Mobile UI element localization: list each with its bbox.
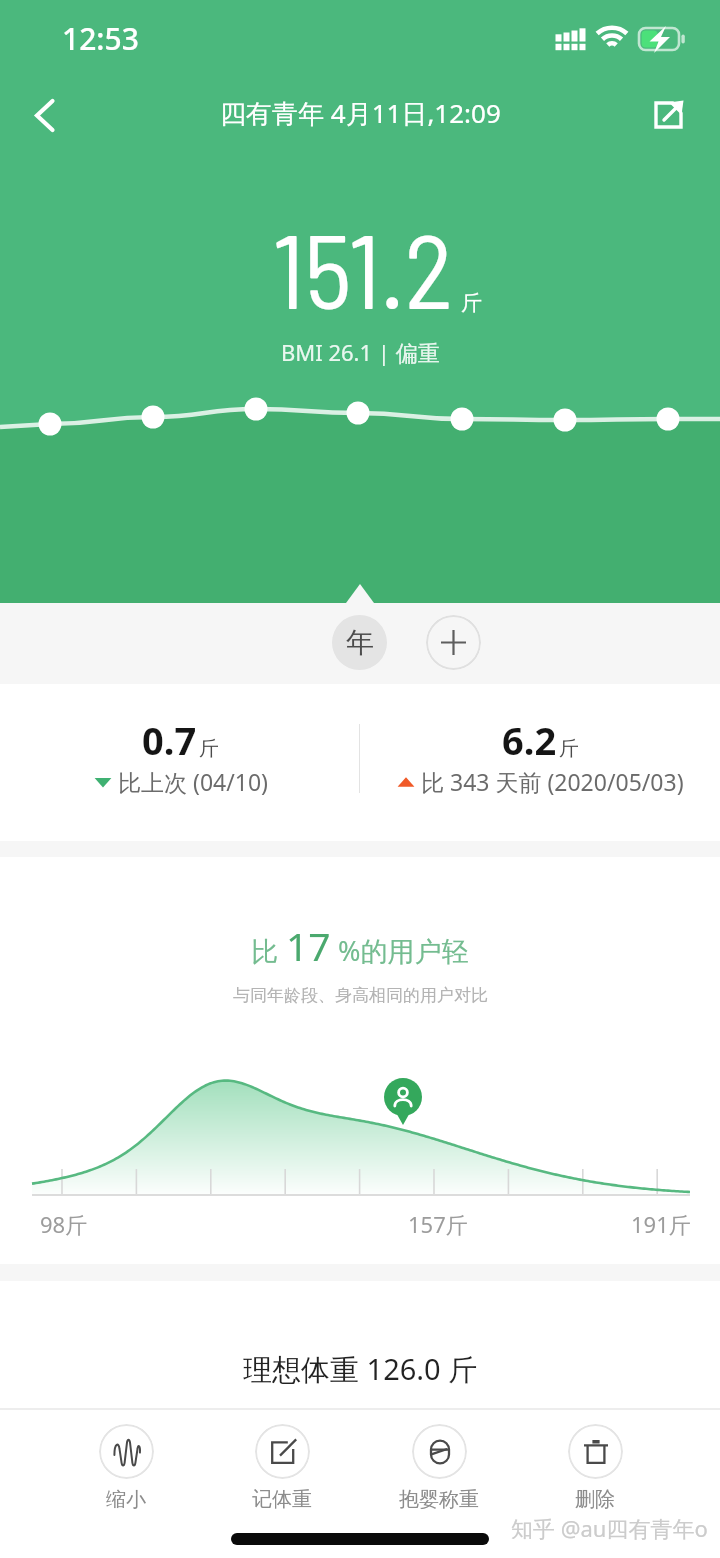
- staticText: 斤: [559, 736, 579, 761]
- staticText: 比: [251, 932, 286, 969]
- staticText: 157斤: [408, 1209, 468, 1239]
- staticText: 12:53: [62, 18, 139, 59]
- staticText: 191斤: [631, 1209, 691, 1239]
- staticText: 6.2: [502, 714, 557, 766]
- staticText: 比 343 天前 (2020/05/03): [421, 766, 684, 797]
- staticText: 98斤: [40, 1209, 88, 1239]
- staticText: 四有青年 4月11日,12:09: [220, 95, 501, 131]
- staticText: 缩小: [106, 1487, 146, 1512]
- staticText: 抱婴称重: [399, 1487, 479, 1512]
- staticText: 年: [346, 625, 374, 660]
- staticText: 斤: [199, 736, 219, 761]
- staticText: 0.7: [142, 714, 197, 766]
- staticText: 删除: [575, 1487, 615, 1512]
- button[interactable]: 0.7: [0, 714, 360, 797]
- staticText: 151.2: [273, 206, 453, 330]
- staticText: 17: [286, 919, 331, 972]
- button[interactable]: 年: [332, 615, 387, 670]
- button[interactable]: 抱婴称重: [379, 1424, 499, 1512]
- button[interactable]: Add: [426, 615, 481, 670]
- staticText: 比上次 (04/10): [118, 766, 268, 797]
- button[interactable]: 删除: [535, 1424, 655, 1512]
- staticText: 斤: [461, 290, 482, 316]
- button[interactable]: 记体重: [222, 1424, 342, 1512]
- button[interactable]: 缩小: [66, 1424, 186, 1512]
- button[interactable]: 理想体重 126.0 斤: [0, 1281, 720, 1408]
- staticText: BMI 26.1 | 偏重: [281, 337, 440, 367]
- button[interactable]: Share: [640, 86, 696, 142]
- staticText: 理想体重 126.0 斤: [243, 1349, 478, 1389]
- staticText: %的用户轻: [331, 932, 469, 969]
- staticText: 记体重: [252, 1487, 312, 1512]
- button[interactable]: Back: [13, 83, 77, 147]
- staticText: 知乎 @au四有青年o: [511, 1513, 708, 1543]
- staticText: 与同年龄段、身高相同的用户对比: [233, 985, 488, 1006]
- button[interactable]: 6.2: [360, 714, 720, 797]
